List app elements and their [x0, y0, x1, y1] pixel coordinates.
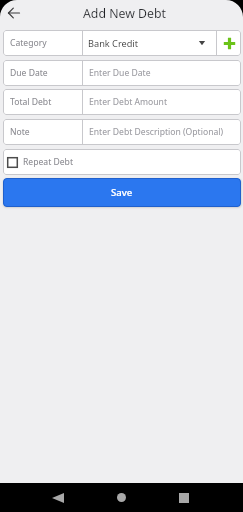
staticText: Save	[111, 186, 133, 199]
button[interactable]: Recent apps	[172, 483, 195, 512]
staticText: Enter Debt Amount	[89, 96, 168, 108]
button[interactable]: Note	[3, 119, 241, 145]
button[interactable]: Total Debt	[3, 89, 241, 115]
staticText: Bank Credit	[88, 37, 139, 50]
button[interactable]: Add new category	[217, 30, 241, 56]
staticText: Enter Debt Description (Optional)	[89, 126, 224, 138]
button[interactable]: Back	[3, 2, 25, 24]
button[interactable]: Home	[110, 483, 133, 512]
button[interactable]: Open category dropdown	[188, 30, 216, 56]
button[interactable]: Back	[46, 483, 69, 512]
staticText: Enter Due Date	[89, 67, 151, 79]
staticText: Category	[10, 37, 47, 49]
staticText: Due Date	[10, 67, 48, 79]
button[interactable]: Category	[3, 30, 241, 56]
staticText: Total Debt	[10, 96, 52, 108]
button[interactable]: Due Date	[3, 60, 241, 86]
staticText: Note	[10, 126, 30, 138]
button[interactable]: Save	[3, 178, 241, 207]
staticText: Repeat Debt	[23, 156, 73, 168]
button[interactable]: Repeat Debt	[3, 149, 241, 175]
staticText: Add New Debt	[83, 5, 166, 22]
